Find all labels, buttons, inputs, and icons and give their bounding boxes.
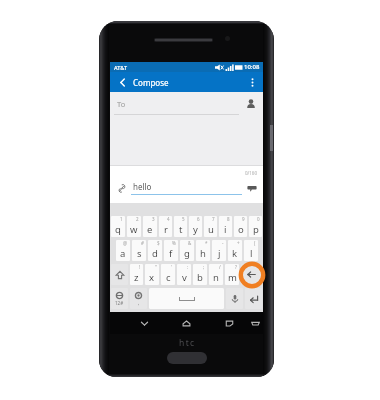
staticText: e — [147, 223, 153, 236]
button[interactable]: Backspace — [241, 264, 262, 285]
staticText: % — [172, 240, 176, 246]
staticText: 5 — [182, 216, 185, 222]
button[interactable]: Send message — [245, 181, 259, 195]
button[interactable]: / — [209, 264, 223, 285]
staticText: 8 — [227, 216, 230, 222]
button[interactable]: Keyboard settings — [130, 288, 147, 309]
button[interactable]: 6 — [189, 216, 202, 237]
staticText: ; — [203, 264, 205, 270]
button[interactable]: 1 — [111, 216, 125, 237]
button[interactable]: ! — [130, 264, 143, 285]
button[interactable]: 7 — [204, 216, 217, 237]
staticText: 12# — [115, 300, 124, 306]
button[interactable]: & — [180, 240, 194, 261]
button[interactable]: 0 — [249, 216, 262, 237]
button[interactable]: Switch keyboard — [111, 288, 128, 309]
button[interactable]: @ — [116, 240, 130, 261]
staticText: u — [208, 223, 214, 236]
staticText: + — [237, 240, 240, 246]
button[interactable]: 2 — [127, 216, 141, 237]
staticText: z — [134, 271, 139, 284]
button[interactable]: ' — [161, 264, 175, 285]
staticText: AT&T — [114, 64, 128, 71]
button[interactable]: ( — [244, 240, 258, 261]
button[interactable]: # — [132, 240, 146, 261]
staticText: , — [138, 300, 140, 306]
button[interactable]: 3 — [143, 216, 157, 237]
button[interactable]: More options — [244, 74, 260, 90]
staticText: 2 — [136, 216, 139, 222]
staticText: 3 — [152, 216, 155, 222]
button[interactable]: Home — [178, 315, 194, 331]
button[interactable]: 4 — [159, 216, 172, 237]
button[interactable]: % — [164, 240, 178, 261]
staticText: i — [224, 223, 227, 236]
staticText: 10:08 — [244, 63, 260, 71]
staticText: 0/160 — [245, 170, 257, 176]
staticText: : — [187, 264, 189, 270]
staticText: Compose — [133, 77, 169, 88]
staticText: x — [149, 271, 155, 284]
button[interactable]: Enter — [245, 288, 262, 309]
button[interactable]: Home button — [167, 352, 207, 364]
staticText: w — [130, 223, 138, 236]
staticText: htc — [179, 337, 196, 348]
staticText: f — [169, 247, 173, 260]
staticText: o — [238, 223, 244, 236]
button[interactable]: Attach file — [115, 182, 128, 195]
button[interactable]: $ — [148, 240, 162, 261]
button[interactable]: ? — [225, 264, 239, 285]
staticText: r — [164, 223, 168, 236]
button[interactable]: Recent apps — [221, 315, 237, 331]
staticText: g — [184, 247, 190, 260]
button[interactable]: : — [177, 264, 191, 285]
staticText: n — [213, 271, 219, 284]
button[interactable]: Back — [136, 315, 152, 331]
staticText: " — [155, 264, 157, 270]
staticText: ? — [235, 264, 237, 270]
staticText: / — [219, 264, 221, 270]
button[interactable]: Navigate back — [114, 74, 130, 90]
staticText: s — [137, 247, 142, 260]
button[interactable]: 8 — [219, 216, 232, 237]
button[interactable]: " — [145, 264, 159, 285]
staticText: h — [200, 247, 206, 260]
staticText: To — [117, 99, 126, 109]
staticText: 7 — [212, 216, 215, 222]
button[interactable]: * — [196, 240, 210, 261]
button[interactable]: Pick contact — [244, 97, 258, 111]
staticText: q — [115, 223, 121, 236]
staticText: c — [166, 271, 171, 284]
staticText: ' — [171, 264, 173, 270]
staticText: p — [253, 223, 259, 236]
button[interactable]: - — [212, 240, 226, 261]
button[interactable]: Voice input — [226, 288, 243, 309]
staticText: t — [179, 223, 183, 236]
staticText: v — [182, 271, 187, 284]
button[interactable]: Shift — [111, 264, 128, 285]
staticText: b — [197, 271, 203, 284]
staticText: y — [193, 223, 198, 236]
staticText: j — [218, 247, 221, 260]
staticText: & — [188, 240, 192, 246]
button[interactable]: ; — [193, 264, 207, 285]
button[interactable]: Space — [149, 288, 224, 309]
staticText: hello — [133, 181, 152, 192]
button[interactable]: 5 — [174, 216, 187, 237]
staticText: $ — [157, 240, 160, 246]
staticText: a — [120, 247, 126, 260]
button[interactable]: Menu — [247, 315, 263, 331]
staticText: 0 — [257, 216, 260, 222]
staticText: 1 — [120, 216, 123, 222]
staticText: - — [222, 240, 224, 246]
button[interactable]: + — [228, 240, 242, 261]
staticText: d — [152, 247, 158, 260]
button[interactable]: 9 — [234, 216, 247, 237]
staticText: # — [141, 240, 144, 246]
staticText: 9 — [242, 216, 245, 222]
staticText: l — [250, 247, 253, 260]
staticText: 6 — [197, 216, 200, 222]
staticText: m — [228, 271, 237, 284]
staticText: k — [232, 247, 238, 260]
staticText: ! — [139, 264, 141, 270]
